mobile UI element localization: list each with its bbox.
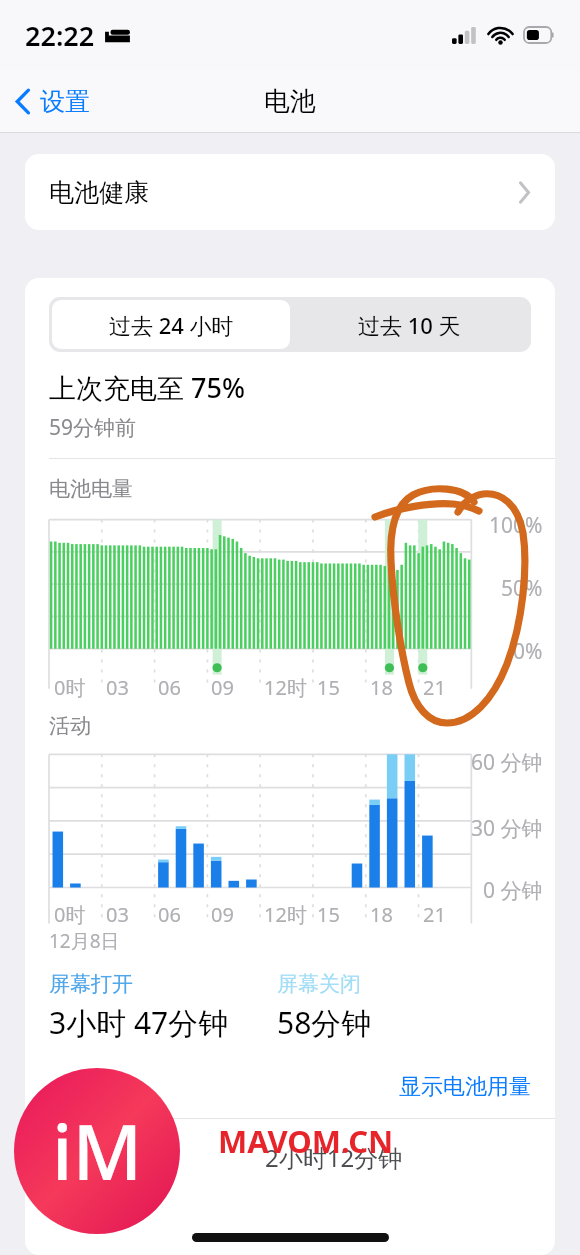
staticText: 09	[211, 674, 234, 701]
staticText: 50%	[501, 574, 543, 603]
staticText: 100%	[489, 511, 543, 540]
staticText: 21	[423, 901, 446, 928]
staticText: 58分钟	[277, 1002, 372, 1043]
staticText: 15	[317, 901, 340, 928]
staticText: 设置	[40, 86, 90, 117]
button[interactable]: 过去 10 天	[290, 300, 528, 349]
staticText: 过去 24 小时	[109, 310, 234, 340]
staticText: 0时	[54, 901, 86, 928]
staticText: 0%	[513, 637, 543, 666]
staticText: 12月8日	[49, 928, 120, 954]
staticText: 电池电量	[49, 476, 133, 502]
staticText: 18	[370, 901, 393, 928]
staticText: 59分钟前	[49, 413, 137, 442]
staticText: 0时	[54, 674, 86, 701]
staticText: 18	[370, 674, 393, 701]
staticText: 30 分钟	[471, 814, 543, 843]
staticText: 上次充电至 75%	[49, 369, 245, 406]
staticText: 60 分钟	[471, 748, 543, 777]
staticText: 06	[158, 674, 181, 701]
staticText: 电池健康	[49, 177, 149, 208]
button[interactable]: 显示电池用量	[399, 1069, 555, 1105]
staticText: 屏幕打开	[49, 971, 133, 997]
staticText: 21	[423, 674, 446, 701]
staticText: 活动	[49, 713, 91, 739]
staticText: iM	[52, 1099, 143, 1203]
staticText: 12时	[264, 901, 307, 928]
staticText: 屏幕关闭	[277, 971, 361, 997]
staticText: 分钟	[49, 1180, 97, 1210]
staticText: 过去 10 天	[358, 310, 461, 340]
button[interactable]: 过去 24 小时	[52, 300, 290, 349]
staticText: 22:22	[25, 17, 95, 54]
staticText: 电池	[264, 85, 316, 118]
staticText: 15	[317, 674, 340, 701]
staticText: 小时39分钟	[49, 1141, 173, 1174]
staticText: 03	[106, 674, 129, 701]
staticText: 0 分钟	[483, 876, 543, 905]
button[interactable]: 返回 设置	[0, 78, 102, 125]
staticText: 06	[158, 901, 181, 928]
staticText: 09	[211, 901, 234, 928]
staticText: 03	[106, 901, 129, 928]
staticText: 2小时12分钟	[265, 1141, 403, 1174]
staticText: MAVOM.CN	[218, 1120, 394, 1162]
staticText: 3小时 47分钟	[49, 1002, 229, 1043]
other: 返回 设置	[15, 88, 31, 115]
button[interactable]: 电池健康	[25, 154, 555, 230]
staticText: 12时	[264, 674, 307, 701]
